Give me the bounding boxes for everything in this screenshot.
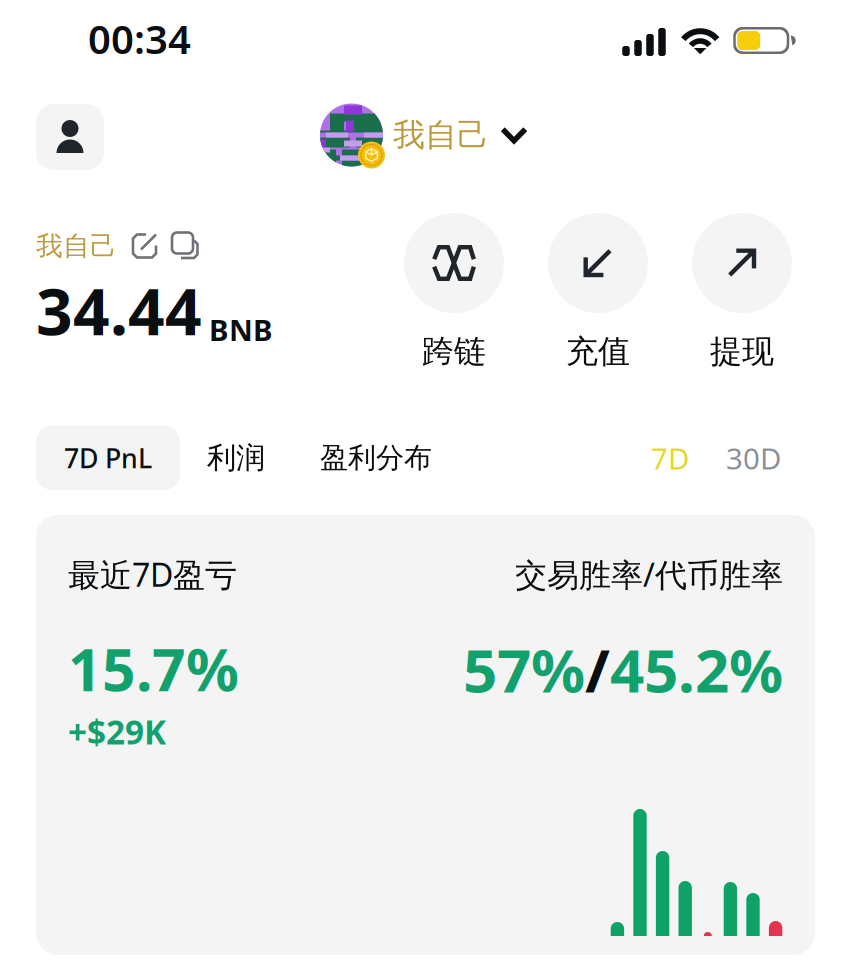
button[interactable]: 7D xyxy=(651,426,689,490)
button[interactable]: 盈利分布 xyxy=(320,426,432,490)
button[interactable]: Copy address xyxy=(171,231,200,260)
button[interactable]: 充值 xyxy=(548,213,648,371)
staticText: 00:34 xyxy=(88,12,191,65)
button[interactable]: 提现 xyxy=(692,213,792,371)
staticText: 34.44 xyxy=(36,268,202,353)
button[interactable]: 我自己 xyxy=(320,102,528,168)
staticText: 提现 xyxy=(710,332,774,371)
button[interactable]: Rename wallet xyxy=(131,232,158,259)
staticText: BNB xyxy=(209,310,273,349)
staticText: 盈利分布 xyxy=(320,441,432,475)
staticText: 跨链 xyxy=(422,332,486,371)
staticText: / xyxy=(585,629,610,709)
button[interactable]: 跨链 xyxy=(404,213,504,371)
staticText: 利润 xyxy=(207,440,265,476)
staticText: 交易胜率/代币胜率 xyxy=(515,553,783,595)
staticText: 我自己 xyxy=(393,115,489,155)
staticText: 15.7% xyxy=(68,629,239,707)
staticText: 45.2% xyxy=(610,629,783,709)
staticText: 57% xyxy=(463,629,585,709)
button[interactable]: 30D xyxy=(726,426,781,490)
staticText: 7D PnL xyxy=(64,440,152,476)
staticText: +$29K xyxy=(68,709,166,754)
button[interactable]: Profile xyxy=(36,104,104,170)
staticText: 充值 xyxy=(566,332,630,371)
staticText: 30D xyxy=(726,438,781,477)
button[interactable]: 利润 xyxy=(207,426,265,490)
staticText: 我自己 xyxy=(36,230,117,262)
staticText: 最近7D盈亏 xyxy=(68,553,237,595)
button[interactable]: 7D PnL xyxy=(36,426,180,490)
staticText: 7D xyxy=(651,438,689,477)
